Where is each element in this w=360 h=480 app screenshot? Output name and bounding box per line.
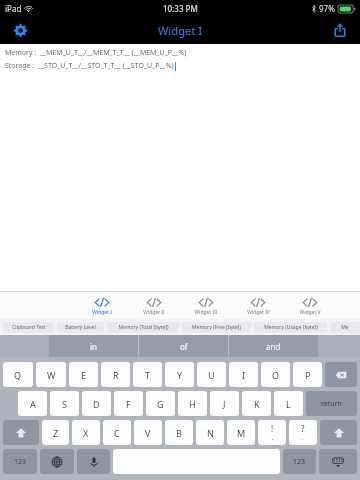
staticText: B xyxy=(176,427,182,439)
staticText: Widget IV xyxy=(247,309,270,316)
staticText: D xyxy=(93,398,100,410)
button[interactable]: 123 xyxy=(3,449,37,474)
button[interactable]: H xyxy=(178,391,207,416)
button[interactable]: Me xyxy=(330,322,360,333)
button[interactable]: L xyxy=(274,391,303,416)
staticText: ! xyxy=(271,423,274,434)
staticText: Me xyxy=(341,324,349,331)
staticText: L xyxy=(286,398,291,410)
button[interactable]: Battery Level xyxy=(57,322,104,333)
staticText: 123 xyxy=(14,457,27,467)
button[interactable]: and xyxy=(229,335,318,357)
staticText: W xyxy=(47,369,56,381)
button[interactable]: Settings xyxy=(6,16,34,44)
button[interactable]: X xyxy=(72,420,100,445)
button[interactable]: M xyxy=(227,420,255,445)
staticText: , xyxy=(272,434,274,442)
button[interactable]: P xyxy=(293,362,322,387)
button[interactable]: V xyxy=(134,420,162,445)
staticText: I xyxy=(242,369,246,381)
button[interactable]: Widget IV xyxy=(245,295,271,316)
staticText: Widget I xyxy=(158,23,203,38)
button[interactable]: Y xyxy=(165,362,194,387)
staticText: Widget V xyxy=(299,309,321,316)
button[interactable]: D xyxy=(82,391,111,416)
button[interactable]: Widget I xyxy=(89,295,115,316)
button[interactable]: Memory (Total [byte]) xyxy=(107,322,179,333)
button[interactable]: of xyxy=(139,335,228,357)
staticText: K xyxy=(254,398,260,410)
button[interactable]: ! xyxy=(258,420,286,445)
staticText: F xyxy=(126,398,131,410)
button[interactable]: T xyxy=(133,362,162,387)
button[interactable]: S xyxy=(50,391,79,416)
staticText: Q xyxy=(14,369,22,381)
staticText: P xyxy=(305,369,311,381)
staticText: R xyxy=(113,369,119,381)
staticText: Widget I xyxy=(92,309,112,316)
staticText: O xyxy=(272,369,280,381)
staticText: M xyxy=(237,427,246,439)
staticText: G xyxy=(157,398,164,410)
button[interactable]: B xyxy=(165,420,193,445)
staticText: return xyxy=(321,399,342,409)
staticText: Clipboard Text xyxy=(12,324,46,331)
button[interactable]: F xyxy=(114,391,143,416)
staticText: E xyxy=(81,369,87,381)
staticText: Memory : __MEM_U_T__/__MEM_T_T__ (__MEM_… xyxy=(5,48,187,58)
staticText: T xyxy=(145,369,151,381)
staticText: A xyxy=(30,398,36,410)
button[interactable]: ? xyxy=(289,420,317,445)
button[interactable]: C xyxy=(103,420,131,445)
staticText: J xyxy=(223,398,226,410)
staticText: Battery Level xyxy=(65,324,96,331)
staticText: N xyxy=(207,427,214,439)
button[interactable]: Share xyxy=(326,16,354,44)
staticText: Memory (Total [byte]) xyxy=(118,324,169,331)
button[interactable]: R xyxy=(101,362,130,387)
button[interactable]: Memory (Usage [byte]) xyxy=(254,322,327,333)
staticText: Widget II xyxy=(143,309,165,316)
button[interactable]: O xyxy=(261,362,290,387)
staticText: X xyxy=(83,427,89,439)
button[interactable]: Widget III xyxy=(193,295,219,316)
staticText: 97% xyxy=(319,3,335,14)
button[interactable]: J xyxy=(210,391,239,416)
button[interactable]: in xyxy=(49,335,138,357)
staticText: H xyxy=(189,398,196,410)
button[interactable]: Memory (Free [byte]) xyxy=(182,322,251,333)
button[interactable] xyxy=(325,362,357,387)
button[interactable]: W xyxy=(36,362,66,387)
staticText: 10:33 PM xyxy=(163,3,198,14)
staticText: C xyxy=(114,427,120,439)
button[interactable]: E xyxy=(69,362,98,387)
button[interactable]: Change keyboard xyxy=(40,449,74,474)
staticText: V xyxy=(145,427,151,439)
staticText: U xyxy=(208,369,215,381)
staticText: Memory (Usage [byte]) xyxy=(264,324,318,331)
staticText: 123 xyxy=(293,457,306,467)
button[interactable]: Shift xyxy=(3,420,39,445)
button[interactable]: Z xyxy=(42,420,69,445)
button[interactable]: Widget II xyxy=(141,295,167,316)
button[interactable]: 123 xyxy=(283,449,316,474)
button[interactable]: U xyxy=(197,362,226,387)
staticText: and xyxy=(266,341,281,352)
button[interactable]: return xyxy=(306,391,357,416)
button[interactable]: N xyxy=(196,420,224,445)
button[interactable]: I xyxy=(229,362,258,387)
button[interactable]: Widget V xyxy=(297,295,323,316)
staticText: Storage : __STO_U_T__/__STO_T_T__ (__STO… xyxy=(5,61,174,71)
button[interactable]: A xyxy=(18,391,47,416)
staticText: Widget III xyxy=(194,309,218,316)
button[interactable]: Clipboard Text xyxy=(3,322,54,333)
button[interactable]: Shift xyxy=(320,420,357,445)
button[interactable]: K xyxy=(242,391,271,416)
button[interactable]: G xyxy=(146,391,175,416)
button[interactable]: Dictate xyxy=(77,449,110,474)
button[interactable]: Q xyxy=(3,362,33,387)
staticText: S xyxy=(62,398,67,410)
staticText: iPad xyxy=(5,3,22,14)
button[interactable]: Hide keyboard xyxy=(319,449,357,474)
